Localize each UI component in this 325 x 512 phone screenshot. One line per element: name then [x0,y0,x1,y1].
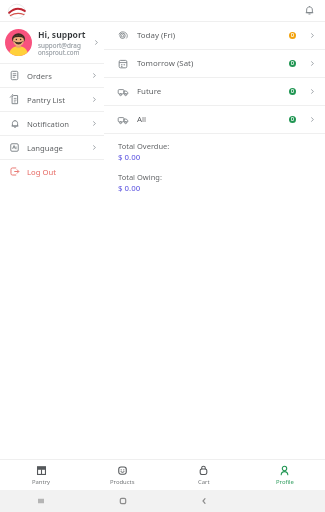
button[interactable]: Hi, support [0,22,104,63]
button[interactable]: Pantry List [0,88,104,111]
staticText: Total Owing: [118,172,162,182]
button[interactable]: Home logo [5,3,33,19]
staticText: Cart [198,478,210,486]
staticText: 0 [291,32,294,39]
button[interactable]: Tomorrow (Sat) [104,50,325,77]
button[interactable]: Profile [244,460,325,490]
staticText: Orders [27,71,91,81]
staticText: Today (Fri) [137,30,289,41]
staticText: Profile [276,478,294,486]
staticText: Hi, support [38,29,86,41]
staticText: Future [137,86,289,97]
staticText: Pantry [32,478,51,486]
staticText: All [137,114,289,125]
staticText: support@drag onsprout.com [38,41,81,57]
button[interactable]: Pantry [0,460,82,490]
staticText: Products [110,478,135,486]
staticText: Log Out [27,167,56,177]
button[interactable]: Language [0,136,104,159]
staticText: 0 [291,88,294,95]
staticText: $ 0.00 [118,183,141,194]
staticText: Notification [27,119,91,129]
button[interactable]: Products [82,460,163,490]
staticText: Language [27,143,91,153]
staticText: 0 [291,116,294,123]
staticText: Tomorrow (Sat) [137,58,289,69]
button[interactable]: Home [82,490,163,512]
button[interactable]: Log Out [0,160,104,183]
button[interactable]: Cart [163,460,244,490]
button[interactable]: Today (Fri) [104,22,325,49]
button[interactable]: Orders [0,64,104,87]
staticText: 0 [291,60,294,67]
button[interactable]: Recent apps [0,490,82,512]
button[interactable]: Notifications [301,2,318,19]
button[interactable]: Future [104,78,325,105]
staticText: Total Overdue: [118,141,170,151]
button[interactable]: All [104,106,325,133]
button[interactable]: Notification [0,112,104,135]
staticText: Pantry List [27,95,91,105]
staticText: $ 0.00 [118,152,141,163]
button[interactable]: Back [163,490,244,512]
